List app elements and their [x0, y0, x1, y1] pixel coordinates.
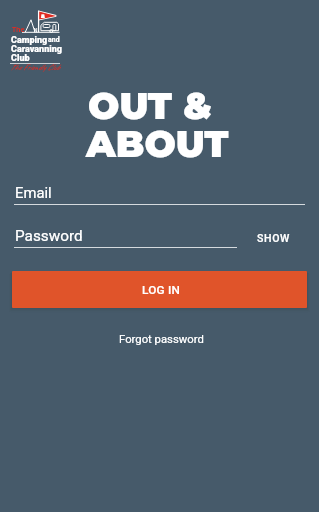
- staticText: SHOW: [257, 232, 290, 244]
- staticText: The: [12, 25, 25, 35]
- staticText: Forgot password: [119, 333, 204, 346]
- staticText: Email: [15, 184, 52, 201]
- button[interactable]: LOG IN: [12, 271, 307, 308]
- staticText: The Friendly Club: [10, 62, 60, 72]
- button[interactable]: Forgot password: [113, 330, 210, 349]
- button[interactable]: Email: [15, 184, 306, 205]
- button[interactable]: Password: [15, 227, 238, 248]
- staticText: Password: [15, 227, 83, 245]
- staticText: Camping: [11, 35, 48, 46]
- button[interactable]: SHOW: [241, 227, 305, 249]
- staticText: Caravanning: [11, 44, 62, 55]
- staticText: and: [48, 36, 60, 44]
- staticText: ABOUT: [86, 121, 229, 166]
- staticText: LOG IN: [142, 283, 181, 297]
- staticText: OUT &: [88, 83, 212, 128]
- staticText: Club: [11, 53, 30, 64]
